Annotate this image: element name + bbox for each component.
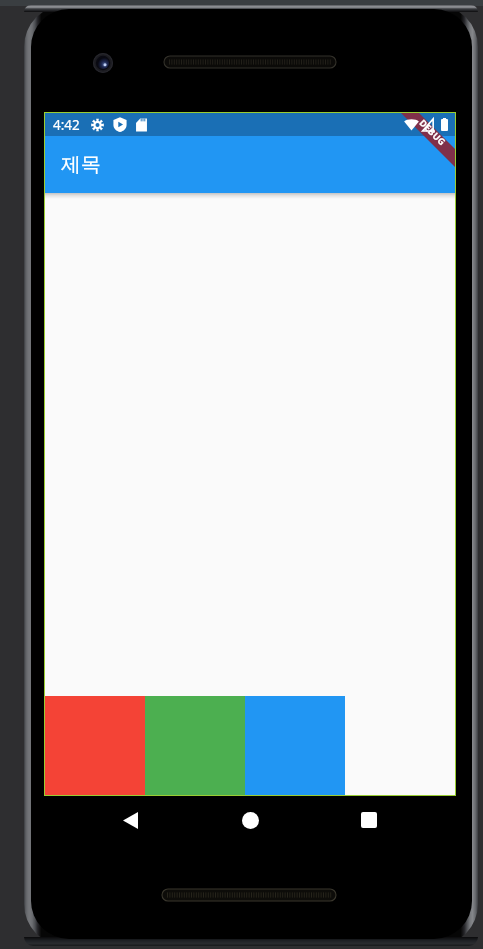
staticText: DEBUG: [417, 116, 448, 147]
button[interactable]: Back: [92, 796, 169, 844]
staticText: 제목: [61, 152, 101, 177]
button[interactable]: Home: [211, 796, 289, 844]
staticText: 4:42: [53, 116, 80, 134]
button[interactable]: Recent apps: [330, 796, 407, 844]
